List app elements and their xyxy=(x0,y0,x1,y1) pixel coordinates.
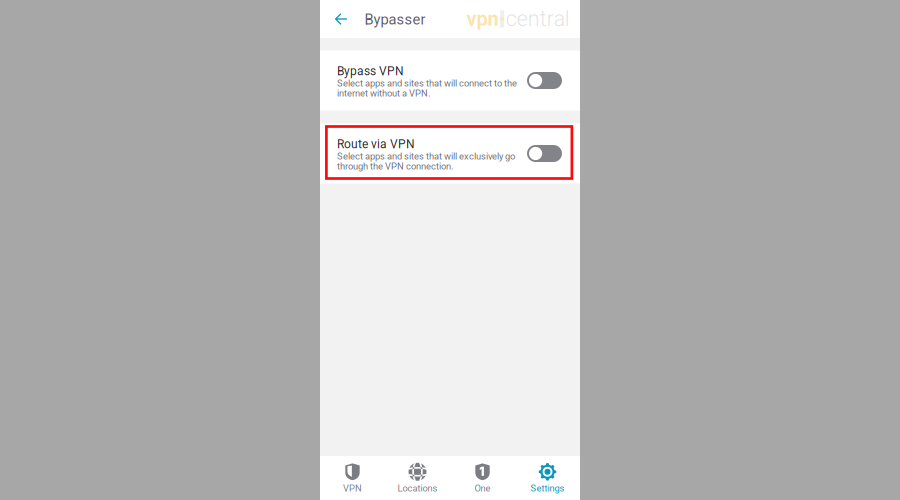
staticText: Bypass VPN xyxy=(337,64,404,78)
staticText: Route via VPN xyxy=(337,137,415,151)
staticText: VPN xyxy=(343,483,362,494)
staticText: vpn xyxy=(466,7,498,31)
button[interactable]: Route via VPN xyxy=(320,123,580,183)
button[interactable]: Locations xyxy=(385,456,450,500)
staticText: Bypasser xyxy=(364,11,425,28)
staticText: One xyxy=(474,483,490,494)
staticText: Settings xyxy=(530,483,564,494)
button[interactable]: Back xyxy=(328,0,354,38)
staticText: Locations xyxy=(397,483,437,494)
staticText: internet without a VPN. xyxy=(337,88,430,99)
staticText: Select apps and sites that will connect … xyxy=(337,78,517,89)
button[interactable]: Bypass VPN xyxy=(320,50,580,110)
button[interactable]: Route via VPN xyxy=(527,145,562,162)
button[interactable]: Bypass VPN xyxy=(527,72,562,89)
staticText: through the VPN connection. xyxy=(337,161,453,172)
staticText: Select apps and sites that will exclusiv… xyxy=(337,151,515,162)
staticText: central xyxy=(506,6,570,31)
button[interactable]: VPN xyxy=(320,456,385,500)
button[interactable]: One xyxy=(450,456,515,500)
button[interactable]: Settings xyxy=(515,456,580,500)
